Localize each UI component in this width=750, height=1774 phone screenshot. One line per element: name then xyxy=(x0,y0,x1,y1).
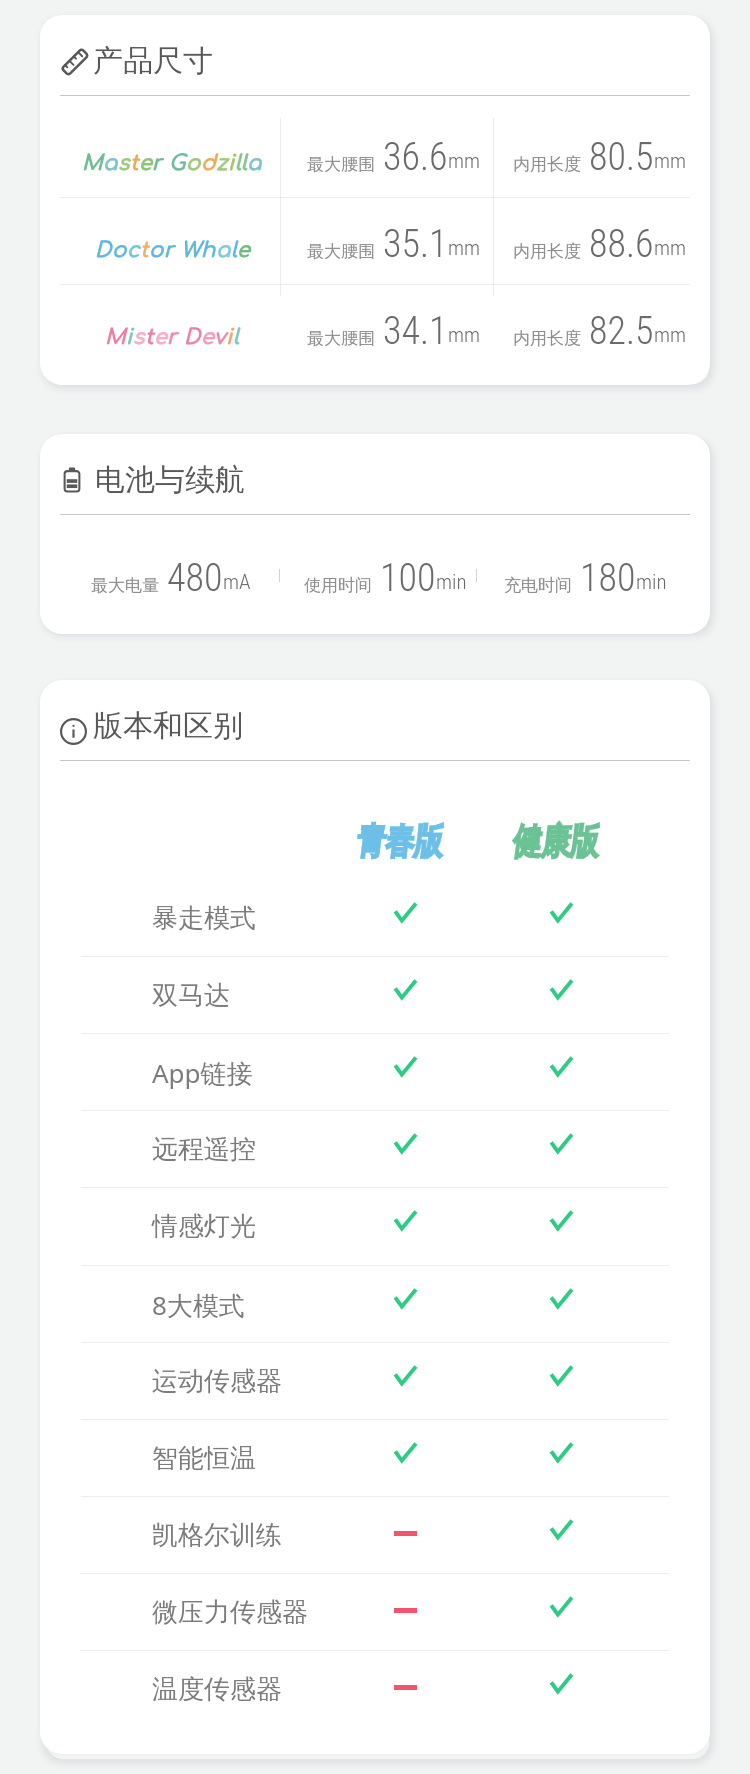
staticText: 版本和区别 xyxy=(93,707,243,745)
staticText: s xyxy=(133,325,145,348)
staticText: mm xyxy=(448,149,481,174)
staticText: h xyxy=(201,238,216,261)
button[interactable]: App链接 xyxy=(40,1033,710,1110)
staticText: 80.5 xyxy=(589,135,654,180)
staticText: l xyxy=(235,151,241,174)
other: Battery xyxy=(60,467,84,493)
staticText: 青春版 xyxy=(362,818,449,864)
staticText: 内用长度 xyxy=(513,154,581,175)
staticText: t xyxy=(130,151,139,174)
staticText: e xyxy=(201,325,214,348)
staticText: D xyxy=(184,325,201,348)
staticText: r xyxy=(167,325,177,348)
button[interactable]: 情感灯光 xyxy=(40,1187,710,1264)
staticText: v xyxy=(214,325,226,348)
staticText: 充电时间 xyxy=(504,575,572,596)
staticText: 智能恒温 xyxy=(152,1442,256,1475)
staticText: o xyxy=(186,151,201,174)
staticText: 双马达 xyxy=(152,979,230,1012)
staticText: r xyxy=(164,238,174,261)
staticText: mm xyxy=(654,149,687,174)
staticText: 最大电量 xyxy=(91,575,159,596)
staticText: 8大模式 xyxy=(152,1287,245,1323)
staticText: 凯格尔训练 xyxy=(152,1519,282,1552)
staticText: 内用长度 xyxy=(513,241,581,262)
staticText: 产品尺寸 xyxy=(93,42,213,80)
button[interactable]: 健康版 xyxy=(481,806,641,876)
staticText: a xyxy=(103,151,118,174)
staticText: 180 xyxy=(580,556,636,601)
staticText: a xyxy=(247,151,262,174)
button[interactable]: 智能恒温 xyxy=(40,1419,710,1496)
staticText: 480 xyxy=(167,556,223,601)
staticText: a xyxy=(216,238,231,261)
staticText: 最大腰围 xyxy=(307,328,375,349)
staticText: 暴走模式 xyxy=(152,902,256,935)
staticText: mm xyxy=(654,236,687,261)
staticText: d xyxy=(201,151,216,174)
staticText: l xyxy=(231,238,237,261)
staticText: 健康版 xyxy=(518,818,605,864)
button[interactable]: 双马达 xyxy=(40,956,710,1033)
staticText: 88.6 xyxy=(589,222,654,267)
staticText: 35.1 xyxy=(383,222,448,267)
staticText: mm xyxy=(448,236,481,261)
staticText: 最大腰围 xyxy=(307,154,375,175)
staticText xyxy=(162,151,169,174)
staticText: 82.5 xyxy=(589,309,654,354)
staticText: i xyxy=(126,325,133,348)
staticText: 微压力传感器 xyxy=(152,1596,308,1629)
staticText: mm xyxy=(654,323,687,348)
staticText xyxy=(174,238,181,261)
staticText: l xyxy=(233,325,239,348)
staticText: 内用长度 xyxy=(513,328,581,349)
staticText: min xyxy=(636,570,667,595)
staticText: e xyxy=(237,238,250,261)
staticText: z xyxy=(216,151,228,174)
button[interactable]: 8大模式 xyxy=(40,1265,710,1342)
staticText: 运动传感器 xyxy=(152,1365,282,1398)
button[interactable]: 运动传感器 xyxy=(40,1342,710,1419)
staticText: t xyxy=(145,325,154,348)
button[interactable]: 青春版 xyxy=(325,806,485,876)
staticText: 温度传感器 xyxy=(152,1673,282,1706)
staticText: mA xyxy=(223,570,251,595)
other: Info xyxy=(60,718,87,745)
staticText: 远程遥控 xyxy=(152,1133,256,1166)
staticText: min xyxy=(436,570,467,595)
staticText: 100 xyxy=(380,556,436,601)
staticText: o xyxy=(112,238,127,261)
button[interactable]: 暴走模式 xyxy=(40,879,710,956)
staticText: i xyxy=(228,151,235,174)
button[interactable]: 凯格尔训练 xyxy=(40,1496,710,1573)
staticText: 电池与续航 xyxy=(95,461,245,499)
staticText: 情感灯光 xyxy=(152,1210,256,1243)
staticText xyxy=(177,325,184,348)
staticText: G xyxy=(169,151,186,174)
staticText: i xyxy=(226,325,233,348)
staticText: M xyxy=(82,151,103,174)
staticText: c xyxy=(127,238,140,261)
staticText: 最大腰围 xyxy=(307,241,375,262)
button[interactable]: 微压力传感器 xyxy=(40,1573,710,1650)
staticText: M xyxy=(105,325,126,348)
staticText: l xyxy=(241,151,247,174)
staticText: W xyxy=(181,238,201,261)
staticText: mm xyxy=(448,323,481,348)
staticText: App链接 xyxy=(152,1055,253,1091)
other: Ruler xyxy=(60,47,90,77)
staticText: e xyxy=(154,325,167,348)
button[interactable]: 远程遥控 xyxy=(40,1110,710,1187)
staticText: e xyxy=(139,151,152,174)
staticText: r xyxy=(152,151,162,174)
staticText: o xyxy=(149,238,164,261)
staticText: 34.1 xyxy=(383,309,448,354)
staticText: 使用时间 xyxy=(304,575,372,596)
button[interactable]: 温度传感器 xyxy=(40,1650,710,1727)
staticText: 36.6 xyxy=(383,135,448,180)
staticText: t xyxy=(140,238,149,261)
staticText: D xyxy=(95,238,112,261)
staticText: s xyxy=(118,151,130,174)
